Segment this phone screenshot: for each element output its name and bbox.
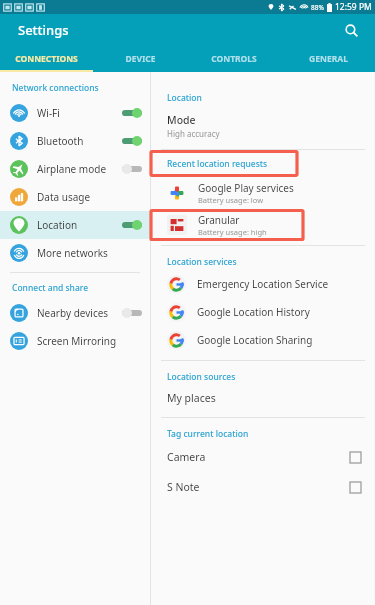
button[interactable]: Bluetooth xyxy=(0,127,150,155)
button[interactable]: Granular xyxy=(151,209,375,241)
staticText: Settings xyxy=(18,21,69,39)
button[interactable]: DEVICE xyxy=(93,46,187,72)
button[interactable]: Wi-Fi xyxy=(0,99,150,127)
button[interactable]: Airplane mode xyxy=(0,155,150,183)
staticText: Battery usage: low xyxy=(198,195,264,205)
button[interactable]: Camera xyxy=(151,442,375,472)
button[interactable]: Location xyxy=(0,211,150,239)
staticText: Location xyxy=(167,92,202,104)
staticText: Google Play services xyxy=(198,181,294,195)
button[interactable]: GENERAL xyxy=(281,46,375,72)
staticText: Location sources xyxy=(167,371,236,383)
staticText: DEVICE xyxy=(125,53,156,65)
staticText: GENERAL xyxy=(309,53,348,65)
button[interactable]: My places xyxy=(151,387,375,409)
staticText: Granular xyxy=(198,213,240,227)
staticText: Location xyxy=(37,218,122,232)
button[interactable]: Google Location Sharing xyxy=(151,326,375,354)
staticText: Recent location requests xyxy=(167,158,268,170)
staticText: Bluetooth xyxy=(37,134,122,148)
staticText: Tag current location xyxy=(167,428,249,440)
button[interactable]: Mode xyxy=(151,113,375,144)
staticText: Mode xyxy=(167,113,196,127)
button[interactable]: Emergency Location Service xyxy=(151,270,375,298)
staticText: 12:59 PM xyxy=(335,1,372,13)
staticText: Network connections xyxy=(12,82,99,94)
staticText: Data usage xyxy=(37,190,142,204)
button[interactable]: More networks xyxy=(0,239,150,267)
staticText: Nearby devices xyxy=(37,306,122,320)
staticText: Location services xyxy=(167,256,237,268)
button[interactable]: CONNECTIONS xyxy=(0,46,93,72)
staticText: My places xyxy=(167,391,216,405)
staticText: Camera xyxy=(167,450,350,464)
button[interactable]: Data usage xyxy=(0,183,150,211)
staticText: Airplane mode xyxy=(37,162,122,176)
staticText: S Note xyxy=(167,480,350,494)
staticText: Battery usage: high xyxy=(198,227,267,237)
staticText: CONTROLS xyxy=(211,53,257,65)
button[interactable]: CONTROLS xyxy=(187,46,281,72)
button[interactable]: Recent location requests xyxy=(151,150,375,177)
staticText: High accuracy xyxy=(167,128,220,139)
button[interactable]: Google Play services xyxy=(151,177,375,209)
staticText: Wi-Fi xyxy=(37,106,122,120)
staticText: Google Location History xyxy=(197,305,310,319)
staticText: Google Location Sharing xyxy=(197,333,313,347)
button[interactable]: S Note xyxy=(151,472,375,502)
staticText: CONNECTIONS xyxy=(15,53,78,65)
staticText: Connect and share xyxy=(12,282,89,294)
button[interactable]: Google Location History xyxy=(151,298,375,326)
staticText: 88% xyxy=(311,3,324,12)
button[interactable]: Search xyxy=(337,16,365,44)
button[interactable]: Nearby devices xyxy=(0,299,150,327)
staticText: Screen Mirroring xyxy=(37,334,142,348)
button[interactable]: Screen Mirroring xyxy=(0,327,150,355)
staticText: More networks xyxy=(37,246,142,260)
staticText: Emergency Location Service xyxy=(197,277,329,291)
